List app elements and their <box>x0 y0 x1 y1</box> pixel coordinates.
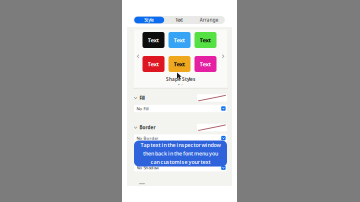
button[interactable]: Text <box>194 56 216 72</box>
staticText: Text <box>199 60 211 68</box>
button[interactable]: Arrange <box>194 17 224 23</box>
staticText: Text <box>173 60 185 68</box>
button[interactable]: Text <box>194 32 216 48</box>
staticText: Border <box>139 124 155 131</box>
staticText: Shadow <box>139 154 157 160</box>
button[interactable]: Text <box>164 17 194 23</box>
button[interactable]: Style <box>134 17 164 23</box>
button[interactable]: Text <box>142 32 164 48</box>
button[interactable]: Text <box>142 56 164 72</box>
staticText: Tap text in the inspector window <box>140 141 220 149</box>
button[interactable]: Text <box>168 56 190 72</box>
staticText: Text <box>147 36 159 44</box>
button[interactable]: No Shadow <box>134 164 227 171</box>
button[interactable]: Text <box>168 32 190 48</box>
button[interactable]: No Border <box>134 134 227 142</box>
staticText: then back in the font menu you <box>143 150 218 157</box>
staticText: Shape Styles <box>166 76 195 82</box>
staticText: No Shadow <box>137 165 159 171</box>
staticText: No Fill <box>137 106 149 111</box>
staticText: No Border <box>137 135 159 141</box>
staticText: Text <box>199 36 211 44</box>
staticText: can customise your text <box>150 158 210 166</box>
button[interactable]: No Fill <box>134 105 227 112</box>
staticText: Text <box>175 17 183 23</box>
staticText: Arrange <box>200 17 219 23</box>
staticText: Text <box>147 60 159 68</box>
staticText: Style <box>144 17 154 23</box>
staticText: Fill <box>139 95 144 101</box>
staticText: Text <box>173 36 185 44</box>
